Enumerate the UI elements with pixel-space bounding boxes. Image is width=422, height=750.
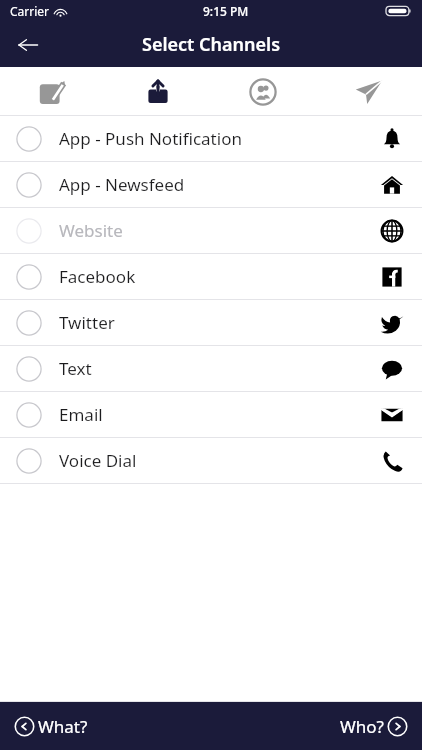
button[interactable]: Website [0, 208, 422, 253]
button[interactable]: App - Newsfeed [0, 162, 422, 207]
staticText: Text [59, 357, 92, 380]
button[interactable]: Text [0, 346, 422, 391]
button[interactable]: Facebook [0, 254, 422, 299]
button[interactable]: Email [0, 392, 422, 437]
staticText: Select Channels [0, 32, 422, 57]
button[interactable]: Twitter [0, 300, 422, 345]
button[interactable]: Back [8, 25, 48, 65]
staticText: Facebook [59, 265, 136, 288]
button[interactable]: Share [105, 67, 210, 116]
staticText: App - Newsfeed [59, 173, 185, 196]
staticText: App - Push Notification [59, 127, 242, 150]
staticText: Website [59, 219, 123, 242]
button[interactable]: App - Push Notification [0, 116, 422, 161]
button[interactable]: Who? [328, 702, 422, 750]
staticText: Voice Dial [59, 449, 137, 472]
staticText: What? [38, 715, 88, 738]
staticText: Email [59, 403, 103, 426]
button[interactable]: Compose [0, 67, 105, 116]
staticText: Twitter [59, 311, 115, 334]
button[interactable]: Voice Dial [0, 438, 422, 483]
button[interactable]: Send [316, 67, 422, 116]
button[interactable]: What? [0, 702, 100, 750]
staticText: 9:15 PM [203, 3, 249, 19]
staticText: Carrier [10, 3, 50, 19]
button[interactable]: Contacts [210, 67, 316, 116]
staticText: Who? [340, 715, 384, 738]
